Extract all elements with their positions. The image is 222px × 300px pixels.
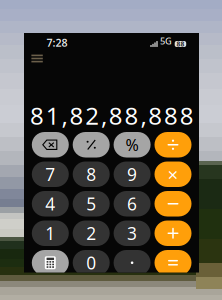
button[interactable]: 4 xyxy=(32,191,69,216)
staticText: 7:28 xyxy=(46,35,67,50)
staticText: 9 xyxy=(127,163,137,186)
button[interactable]: 1 xyxy=(32,220,69,246)
button[interactable]: Plus xyxy=(154,220,191,246)
button[interactable]: 6 xyxy=(114,191,151,216)
button[interactable]: 0 xyxy=(73,250,110,275)
button[interactable]: Divide xyxy=(154,132,191,157)
staticText: 8 xyxy=(125,100,139,131)
staticText: , xyxy=(62,100,68,131)
button[interactable]: 2 xyxy=(73,220,110,246)
staticText: 1 xyxy=(46,100,60,131)
staticText: 0 xyxy=(86,251,96,274)
button[interactable]: 5 xyxy=(73,191,110,216)
staticText: × xyxy=(167,162,178,187)
staticText: 8 xyxy=(109,100,123,131)
staticText: , xyxy=(101,100,107,131)
staticText: 5G xyxy=(160,35,172,47)
staticText: 8 xyxy=(180,100,194,131)
button[interactable]: Calculator history xyxy=(28,49,46,67)
staticText: 6 xyxy=(127,192,137,215)
staticText: 3 xyxy=(127,222,137,245)
staticText: 8 xyxy=(164,100,178,131)
staticText: 4 xyxy=(45,192,55,215)
button[interactable]: Multiply xyxy=(154,161,191,187)
staticText: 8 xyxy=(86,163,96,186)
staticText: 5 xyxy=(86,192,96,215)
button[interactable]: Percent xyxy=(114,132,151,157)
staticText: 2 xyxy=(86,222,96,245)
button[interactable]: 9 xyxy=(114,161,151,187)
button[interactable]: Decimal point xyxy=(114,250,151,275)
staticText: 1 xyxy=(45,222,55,245)
staticText: % xyxy=(126,134,139,155)
button[interactable]: Equals xyxy=(154,250,191,275)
button[interactable]: Plus minus xyxy=(73,132,110,157)
button[interactable]: Minus xyxy=(154,191,191,216)
staticText: , xyxy=(140,100,146,131)
staticText: 8 xyxy=(148,100,162,131)
button[interactable]: 8 xyxy=(73,161,110,187)
button[interactable]: 3 xyxy=(114,220,151,246)
button[interactable]: Delete xyxy=(32,132,69,157)
staticText: 8 xyxy=(69,100,83,131)
button[interactable]: Converter xyxy=(32,250,69,275)
staticText: 88 xyxy=(176,40,184,48)
button[interactable]: 7 xyxy=(32,161,69,187)
staticText: 8 xyxy=(30,100,44,131)
staticText: 7 xyxy=(45,163,55,186)
staticText: 2 xyxy=(85,100,99,131)
